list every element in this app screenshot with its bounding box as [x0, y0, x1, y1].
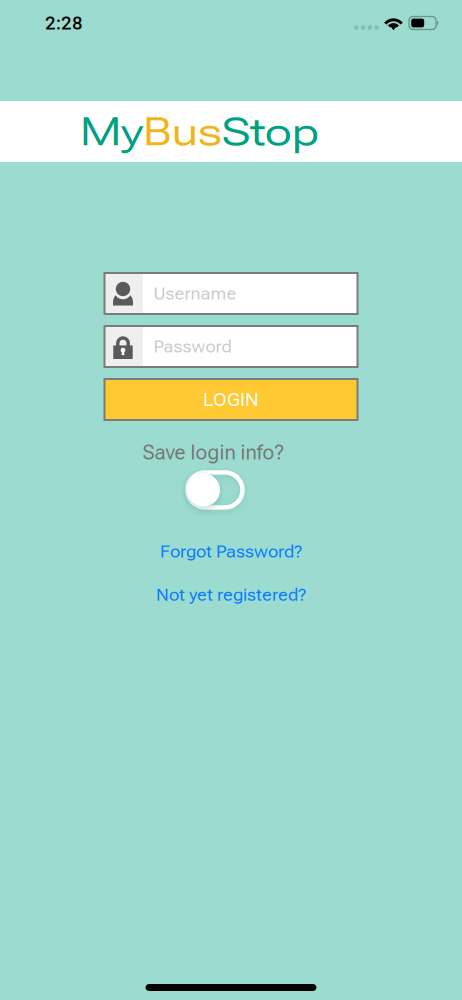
staticText: 2:28 — [45, 12, 83, 34]
button[interactable]: Forgot Password? — [152, 536, 310, 567]
button[interactable]: Save login info toggle, off — [187, 472, 242, 507]
staticText: Username — [153, 283, 236, 304]
staticText: Save login info? — [142, 441, 283, 464]
button[interactable]: LOGIN — [102, 377, 359, 422]
staticText: Password — [153, 336, 231, 357]
staticText: Stop — [222, 108, 319, 155]
button[interactable]: Password — [102, 324, 359, 369]
button[interactable]: Not yet registered? — [148, 580, 314, 610]
button[interactable]: Username — [102, 271, 359, 316]
staticText: Forgot Password? — [160, 541, 302, 562]
staticText: My — [80, 108, 143, 155]
staticText: Not yet registered? — [156, 585, 306, 605]
staticText: LOGIN — [203, 389, 259, 410]
staticText: Bus — [143, 108, 222, 155]
